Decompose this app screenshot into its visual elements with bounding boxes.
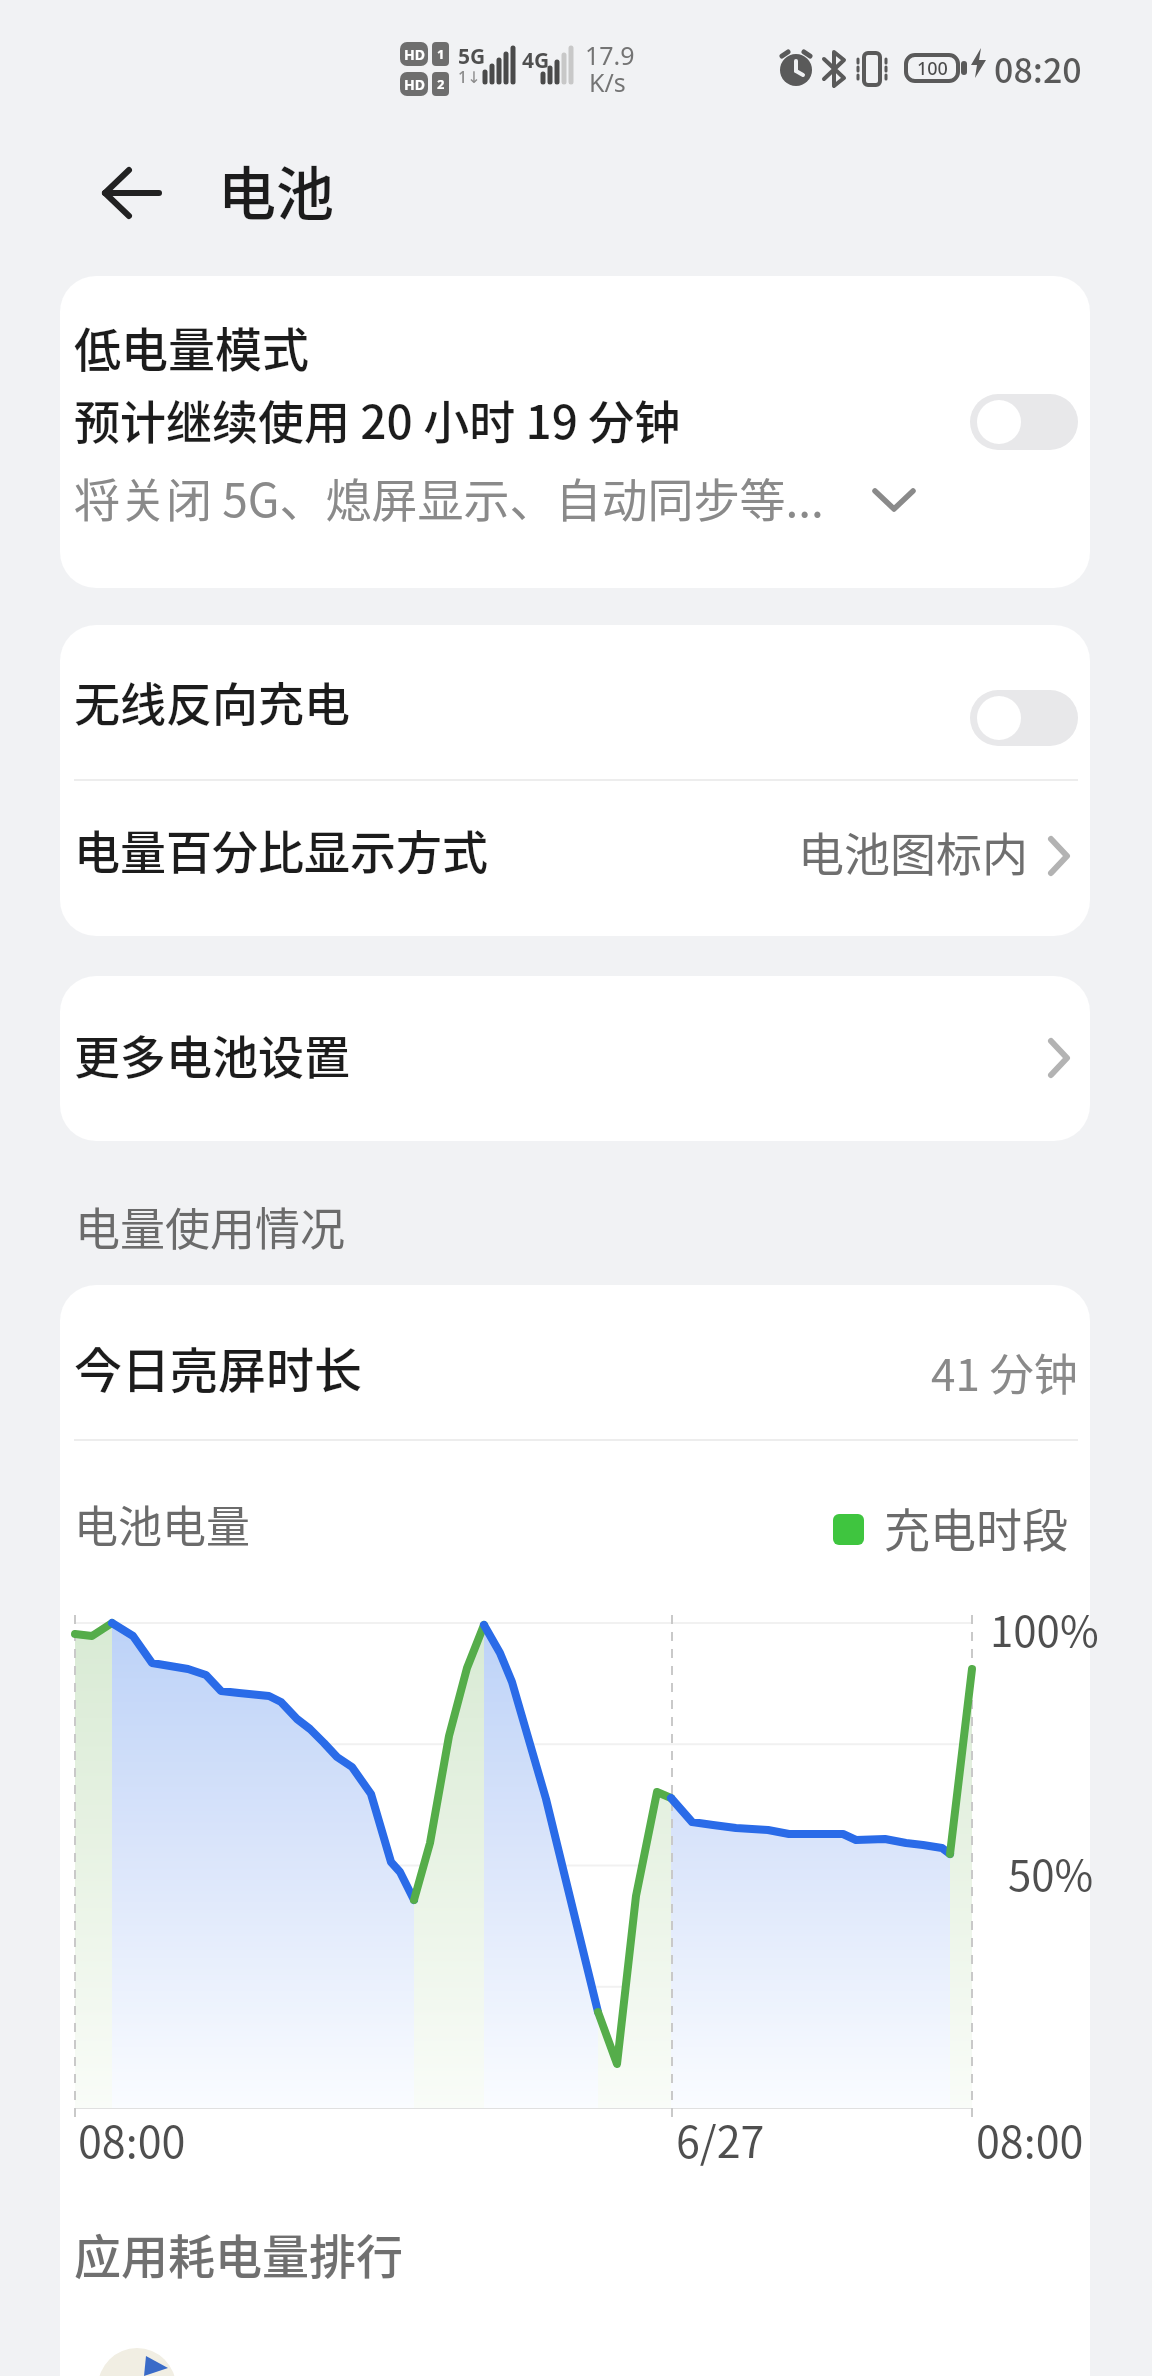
button[interactable] — [60, 276, 1090, 588]
staticText: 100 — [917, 56, 948, 81]
staticText: 电池电量 — [74, 1492, 250, 1556]
staticText: 今日亮屏时长 — [74, 1332, 363, 1402]
staticText: 1↓ — [458, 66, 481, 88]
staticText: HD — [404, 45, 425, 64]
button[interactable] — [60, 780, 1090, 936]
button[interactable] — [102, 163, 162, 223]
staticText: 预计继续使用 20 小时 19 分钟 — [74, 386, 681, 453]
button[interactable] — [970, 690, 1078, 746]
staticText: HD — [404, 75, 425, 94]
staticText: 17.9 — [585, 38, 635, 72]
staticText: 应用耗电量排行 — [74, 2219, 403, 2287]
button[interactable] — [60, 1285, 1090, 1440]
button[interactable] — [60, 976, 1090, 1141]
staticText: 电量百分比显示方式 — [74, 816, 488, 883]
staticText: 电池图标内 — [798, 818, 1028, 885]
staticText: 08:00 — [78, 2108, 186, 2170]
staticText: 6/27 — [676, 2108, 765, 2170]
staticText: 100% — [990, 1598, 1099, 1659]
staticText: 50% — [1008, 1842, 1094, 1903]
staticText: 5G — [458, 42, 486, 71]
staticText: 充电时段 — [884, 1494, 1068, 1561]
button[interactable] — [970, 394, 1078, 450]
staticText: 低电量模式 — [74, 312, 309, 380]
staticText: 电量使用情况 — [75, 1194, 346, 1259]
button[interactable] — [60, 625, 1090, 779]
staticText: 41 分钟 — [931, 1340, 1078, 1404]
staticText: 4G — [522, 46, 550, 75]
staticText: 电池 — [218, 148, 335, 232]
staticText: 08:20 — [994, 44, 1082, 93]
staticText: 08:00 — [976, 2108, 1084, 2170]
staticText: 将关闭 5G、熄屏显示、自动同步等... — [74, 464, 824, 531]
staticText: 2 — [437, 75, 445, 93]
staticText: 1 — [437, 45, 445, 63]
staticText: K/s — [589, 65, 626, 99]
staticText: 无线反向充电 — [74, 668, 350, 735]
staticText: 更多电池设置 — [74, 1021, 350, 1088]
